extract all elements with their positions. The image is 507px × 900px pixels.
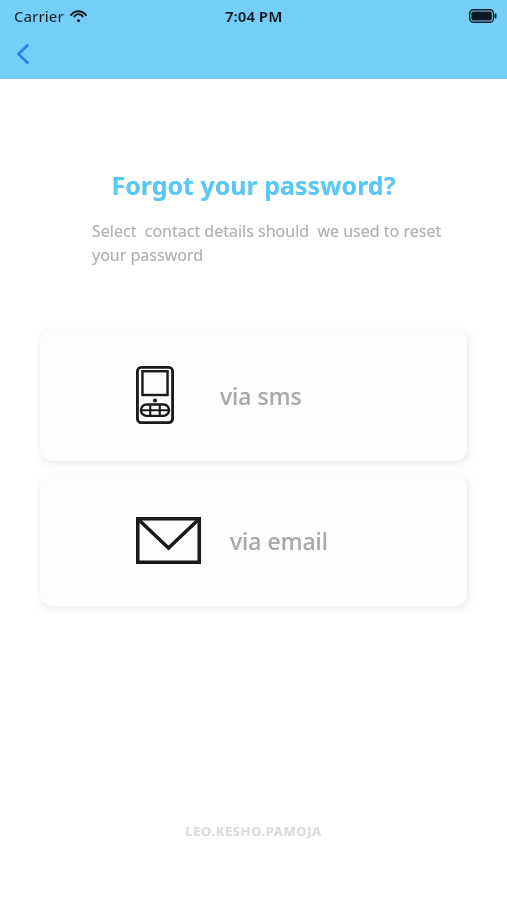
staticText: 7:04 PM xyxy=(225,6,283,26)
button[interactable]: via sms xyxy=(40,329,467,461)
staticText: Forgot your password? xyxy=(0,168,507,202)
staticText: Carrier xyxy=(14,6,64,26)
staticText: LEO.KESHO.PAMOJA xyxy=(0,822,507,840)
button[interactable]: Back xyxy=(4,34,44,74)
staticText: via email xyxy=(230,525,329,556)
staticText: Select contact details should we used to… xyxy=(92,220,447,266)
staticText: via sms xyxy=(220,380,302,411)
button[interactable]: via email xyxy=(40,474,467,606)
